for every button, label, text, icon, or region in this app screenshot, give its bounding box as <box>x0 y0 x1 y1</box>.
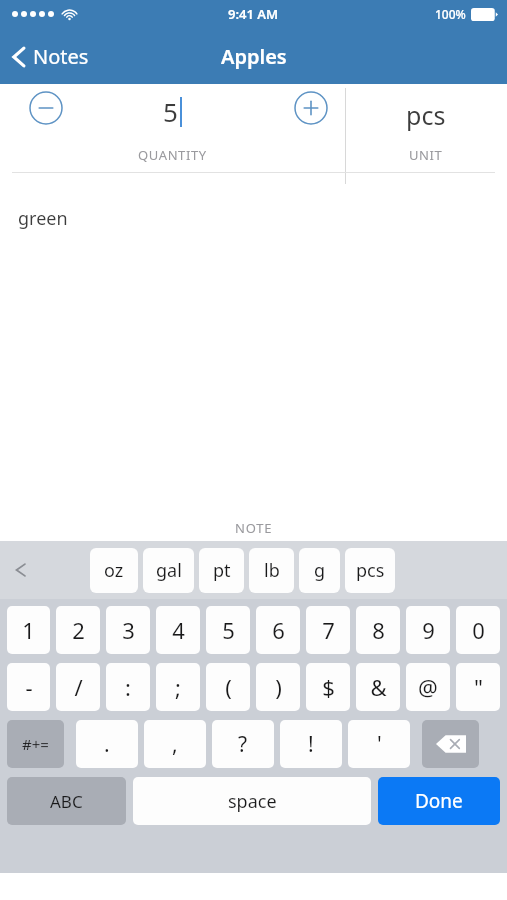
staticText: ! <box>308 730 314 759</box>
staticText: pt <box>213 558 231 583</box>
button[interactable]: 0 <box>456 606 500 654</box>
button[interactable]: #+= <box>7 720 64 768</box>
button[interactable]: 8 <box>356 606 400 654</box>
staticText: 0 <box>472 615 485 645</box>
button[interactable]: ; <box>156 663 200 711</box>
button[interactable]: Increase quantity <box>294 91 328 125</box>
button[interactable]: pt <box>199 548 244 593</box>
button[interactable]: " <box>456 663 500 711</box>
button[interactable]: 9 <box>406 606 450 654</box>
button[interactable]: ? <box>212 720 274 768</box>
button[interactable]: 4 <box>156 606 200 654</box>
staticText: NOTE <box>235 519 273 537</box>
staticText: 1 <box>22 615 35 645</box>
staticText: / <box>74 672 83 702</box>
button[interactable]: 6 <box>256 606 300 654</box>
button[interactable]: pcs <box>345 548 395 593</box>
staticText: ( <box>225 672 232 702</box>
button[interactable]: g <box>299 548 340 593</box>
button[interactable]: , <box>144 720 206 768</box>
staticText: ABC <box>50 790 83 813</box>
staticText: gal <box>156 558 182 583</box>
button[interactable]: 7 <box>306 606 350 654</box>
staticText: : <box>125 672 131 702</box>
staticText: - <box>25 672 33 702</box>
staticText: 6 <box>272 615 285 645</box>
staticText: 100% <box>435 6 466 22</box>
staticText: 5 <box>163 94 178 129</box>
staticText: oz <box>104 558 124 583</box>
button[interactable]: Delete <box>422 720 479 768</box>
staticText: & <box>370 672 387 702</box>
button[interactable]: space <box>133 777 371 825</box>
staticText: . <box>104 730 110 759</box>
button[interactable]: & <box>356 663 400 711</box>
staticText: " <box>474 672 483 702</box>
staticText: QUANTITY <box>138 146 207 164</box>
button[interactable]: green <box>0 194 507 541</box>
button[interactable]: - <box>7 663 50 711</box>
button[interactable]: . <box>76 720 138 768</box>
staticText: UNIT <box>409 146 443 164</box>
button[interactable]: / <box>56 663 100 711</box>
staticText: $ <box>322 672 335 702</box>
button[interactable]: ABC <box>7 777 126 825</box>
button[interactable]: oz <box>90 548 138 593</box>
staticText: Done <box>415 788 463 814</box>
button[interactable]: 3 <box>106 606 150 654</box>
button[interactable]: Decrease quantity <box>29 91 63 125</box>
staticText: pcs <box>406 98 446 132</box>
staticText: space <box>228 789 277 814</box>
button[interactable]: ! <box>280 720 342 768</box>
button[interactable]: 1 <box>7 606 50 654</box>
staticText: ? <box>238 730 248 759</box>
staticText: ' <box>377 730 382 759</box>
button[interactable]: Notes <box>0 37 99 76</box>
staticText: 2 <box>72 615 85 645</box>
staticText: 7 <box>322 615 335 645</box>
button[interactable]: 2 <box>56 606 100 654</box>
staticText: Notes <box>33 43 89 70</box>
button[interactable]: gal <box>143 548 194 593</box>
staticText: 8 <box>372 615 385 645</box>
button[interactable]: ( <box>206 663 250 711</box>
staticText: 3 <box>122 615 135 645</box>
button[interactable]: lb <box>249 548 294 593</box>
staticText: ) <box>275 672 282 702</box>
staticText: @ <box>418 672 438 702</box>
button[interactable]: ) <box>256 663 300 711</box>
staticText: g <box>314 558 326 583</box>
staticText: green <box>18 206 68 231</box>
staticText: pcs <box>356 558 385 583</box>
button[interactable]: ' <box>348 720 410 768</box>
staticText: lb <box>264 558 280 583</box>
button[interactable]: 5 <box>206 606 250 654</box>
button[interactable]: @ <box>406 663 450 711</box>
staticText: , <box>172 730 178 759</box>
staticText: 9 <box>422 615 435 645</box>
staticText: ; <box>175 672 181 702</box>
button[interactable]: $ <box>306 663 350 711</box>
staticText: 5 <box>222 615 235 645</box>
button[interactable]: Done <box>378 777 500 825</box>
button[interactable]: pcs <box>345 84 507 194</box>
staticText: #+= <box>22 734 49 754</box>
staticText: Apples <box>221 43 287 70</box>
staticText: 4 <box>172 615 185 645</box>
staticText: 9:41 AM <box>228 5 279 23</box>
button[interactable]: Previous <box>4 553 38 587</box>
button[interactable]: : <box>106 663 150 711</box>
